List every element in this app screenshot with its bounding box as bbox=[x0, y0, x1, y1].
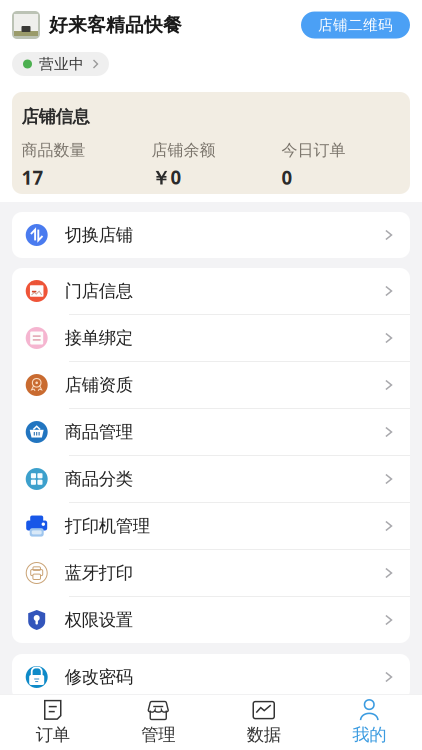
staticText: 商品数量 bbox=[21, 140, 85, 160]
button[interactable]: 蓝牙打印 bbox=[12, 550, 410, 596]
staticText: 店铺余额 bbox=[151, 140, 215, 160]
button[interactable]: 营业中 bbox=[12, 52, 109, 76]
staticText: 商品管理 bbox=[65, 421, 133, 443]
button[interactable]: 修改密码 bbox=[12, 654, 410, 700]
button[interactable]: 我的 bbox=[316, 695, 422, 750]
staticText: 17 bbox=[21, 165, 43, 190]
button[interactable]: 接单绑定 bbox=[12, 315, 410, 361]
staticText: 数据 bbox=[247, 724, 281, 745]
staticText: 店铺二维码 bbox=[318, 16, 393, 34]
button[interactable]: 商品分类 bbox=[12, 456, 410, 502]
staticText: 我的 bbox=[352, 724, 386, 745]
staticText: 店铺资质 bbox=[65, 374, 133, 396]
staticText: 营业中 bbox=[39, 55, 84, 73]
staticText: 今日订单 bbox=[281, 140, 345, 160]
staticText: 切换店铺 bbox=[65, 224, 133, 246]
button[interactable]: 管理 bbox=[105, 695, 211, 750]
staticText: 商品分类 bbox=[65, 468, 133, 490]
button[interactable]: 打印机管理 bbox=[12, 503, 410, 549]
button[interactable]: 数据 bbox=[211, 695, 316, 750]
button[interactable]: 门店信息 bbox=[12, 268, 410, 314]
staticText: 好来客精品快餐 bbox=[49, 13, 182, 36]
button[interactable]: 店铺资质 bbox=[12, 362, 410, 408]
button[interactable]: 订单 bbox=[0, 695, 105, 750]
staticText: 修改密码 bbox=[65, 666, 133, 688]
button[interactable]: 店铺二维码 bbox=[301, 11, 410, 38]
staticText: 权限设置 bbox=[65, 609, 133, 631]
staticText: 0 bbox=[281, 165, 292, 190]
staticText: 打印机管理 bbox=[65, 515, 150, 537]
staticText: 蓝牙打印 bbox=[65, 562, 133, 584]
staticText: 订单 bbox=[36, 724, 70, 745]
staticText: 管理 bbox=[141, 724, 175, 745]
button[interactable]: 权限设置 bbox=[12, 597, 410, 643]
button[interactable]: 切换店铺 bbox=[12, 212, 410, 258]
staticText: 接单绑定 bbox=[65, 327, 133, 349]
staticText: 店铺信息 bbox=[21, 106, 89, 127]
staticText: ￥0 bbox=[151, 165, 181, 190]
staticText: 门店信息 bbox=[65, 280, 133, 302]
button[interactable]: 商品管理 bbox=[12, 409, 410, 455]
